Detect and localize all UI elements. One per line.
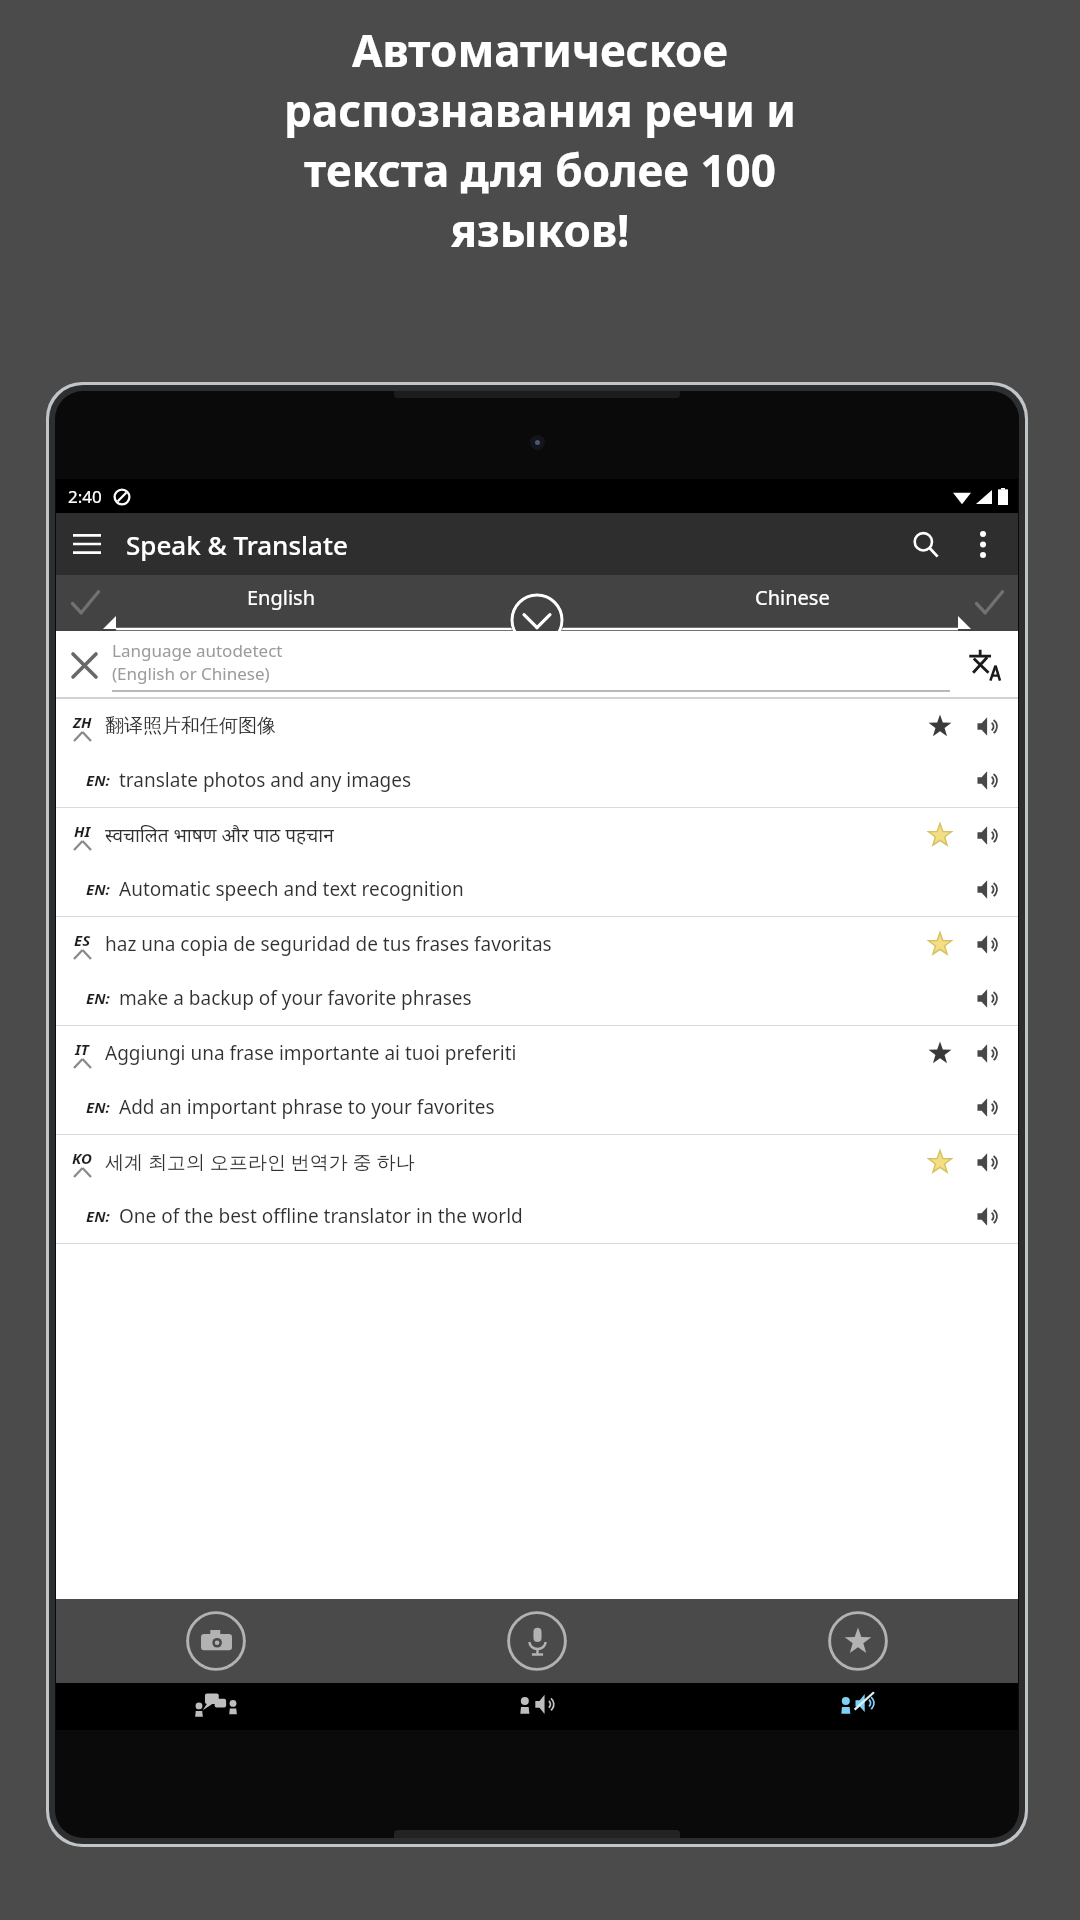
staticText: Add an important phrase to your favorite… [119,1094,916,1120]
staticText: Automatic speech and text recognition [119,876,916,902]
staticText: स्वचालित भाषण और पाठ पहचान [105,822,916,848]
staticText: Chinese [755,584,830,611]
button[interactable]: Play source audio [964,702,1012,750]
button[interactable]: KO [56,1135,1018,1244]
button[interactable]: More options [956,517,1010,571]
button[interactable]: Conversation mode [56,1683,376,1730]
staticText: Aggiungi una frase importante ai tuoi pr… [105,1040,916,1066]
button[interactable]: ES [56,917,1018,1026]
staticText: haz una copia de seguridad de tus frases… [105,931,916,957]
staticText: Автоматическое [30,20,1050,80]
button[interactable]: Toggle favorite [916,702,964,750]
staticText: 세계 최고의 오프라인 번역가 중 하나 [105,1149,916,1175]
staticText: 2:40 [68,485,102,508]
button[interactable]: Play source audio [964,920,1012,968]
staticText: EN: [86,988,110,1008]
button[interactable]: Source language confirmed [62,580,108,626]
button[interactable]: Toggle favorite [916,811,964,859]
staticText: EN: [86,879,110,899]
button[interactable]: Voice input [376,1599,697,1683]
button[interactable]: Toggle favorite [916,920,964,968]
staticText: EN: [86,1097,110,1117]
button[interactable]: Mute mode [697,1683,1018,1730]
button[interactable]: Chinese [567,575,1018,631]
staticText: EN: [86,770,110,790]
button[interactable]: Toggle favorite [916,1138,964,1186]
staticText: Speak & Translate [126,527,348,562]
button[interactable]: Play translation audio [964,865,1012,913]
button[interactable]: Clear text [56,637,112,693]
button[interactable]: Language autodetect [112,631,950,699]
button[interactable]: Search [894,513,956,575]
button[interactable]: Open navigation drawer [56,513,118,575]
button[interactable]: Camera translate [56,1599,376,1683]
staticText: (English or Chinese) [112,662,270,685]
staticText: KO [72,1148,92,1168]
staticText: 翻译照片和任何图像 [105,714,916,738]
button[interactable]: Swap languages [510,593,564,647]
button[interactable]: Play translation audio [964,1083,1012,1131]
button[interactable]: Play source audio [964,1029,1012,1077]
button[interactable]: HI [56,808,1018,917]
button[interactable]: Play translation audio [964,974,1012,1022]
button[interactable]: Play translation audio [964,1192,1012,1240]
button[interactable]: Translate [950,631,1018,699]
staticText: English [247,584,316,611]
button[interactable]: Speak aloud mode [376,1683,697,1730]
button[interactable]: Target language confirmed [966,580,1012,626]
button[interactable]: IT [56,1026,1018,1135]
button[interactable]: Play translation audio [964,756,1012,804]
button[interactable]: Favorites [697,1599,1018,1683]
staticText: HI [74,821,91,841]
staticText: текста для более 100 [30,140,1050,200]
button[interactable]: ZH [56,699,1018,808]
button[interactable]: Play source audio [964,811,1012,859]
button[interactable]: Toggle favorite [916,1029,964,1077]
button[interactable]: Play source audio [964,1138,1012,1186]
staticText: языков! [30,200,1050,260]
staticText: распознавания речи и [30,80,1050,140]
staticText: Language autodetect [112,639,283,662]
staticText: ZH [73,712,92,732]
staticText: make a backup of your favorite phrases [119,985,916,1011]
staticText: ES [74,930,91,950]
staticText: translate photos and any images [119,767,916,793]
staticText: IT [75,1039,89,1059]
staticText: One of the best offline translator in th… [119,1203,916,1229]
staticText: EN: [86,1206,110,1226]
button[interactable]: English [56,575,507,631]
